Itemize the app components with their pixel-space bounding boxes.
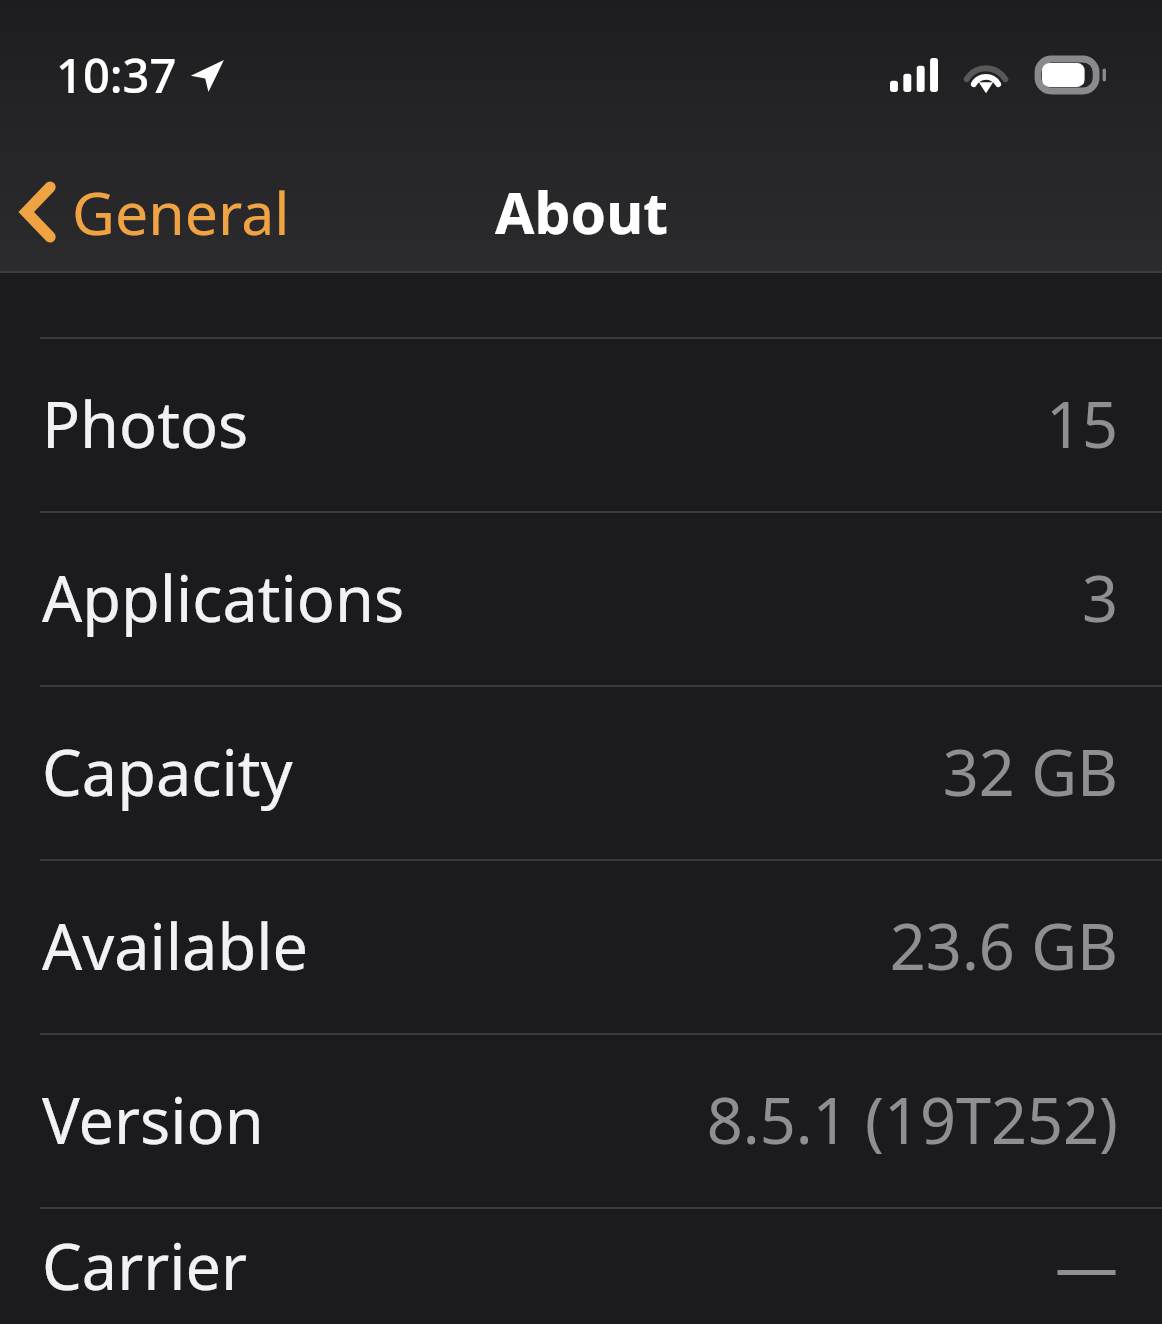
staticText: About [495, 173, 668, 251]
staticText: 10:37 [56, 43, 177, 107]
button[interactable]: Photos [0, 337, 1162, 511]
staticText: General [72, 172, 290, 252]
button[interactable]: Available [0, 859, 1162, 1033]
button[interactable]: Back [0, 150, 308, 273]
button[interactable]: Capacity [0, 685, 1162, 859]
staticText: Available [42, 903, 308, 989]
staticText: 23.6 GB [889, 903, 1118, 989]
staticText: 15 [1045, 381, 1118, 467]
staticText: Applications [42, 555, 405, 641]
staticText: Version [42, 1077, 264, 1163]
staticText: Carrier [42, 1223, 248, 1309]
staticText: 8.5.1 (19T252) [706, 1077, 1118, 1163]
staticText: 32 GB [942, 729, 1118, 815]
button[interactable]: Version [0, 1033, 1162, 1207]
staticText: Photos [42, 381, 249, 467]
button[interactable]: Carrier [0, 1207, 1162, 1324]
other: Back [20, 182, 54, 242]
staticText: 3 [1081, 555, 1118, 641]
button[interactable]: Applications [0, 511, 1162, 685]
staticText: — [1055, 1223, 1118, 1309]
staticText: Capacity [42, 729, 293, 815]
